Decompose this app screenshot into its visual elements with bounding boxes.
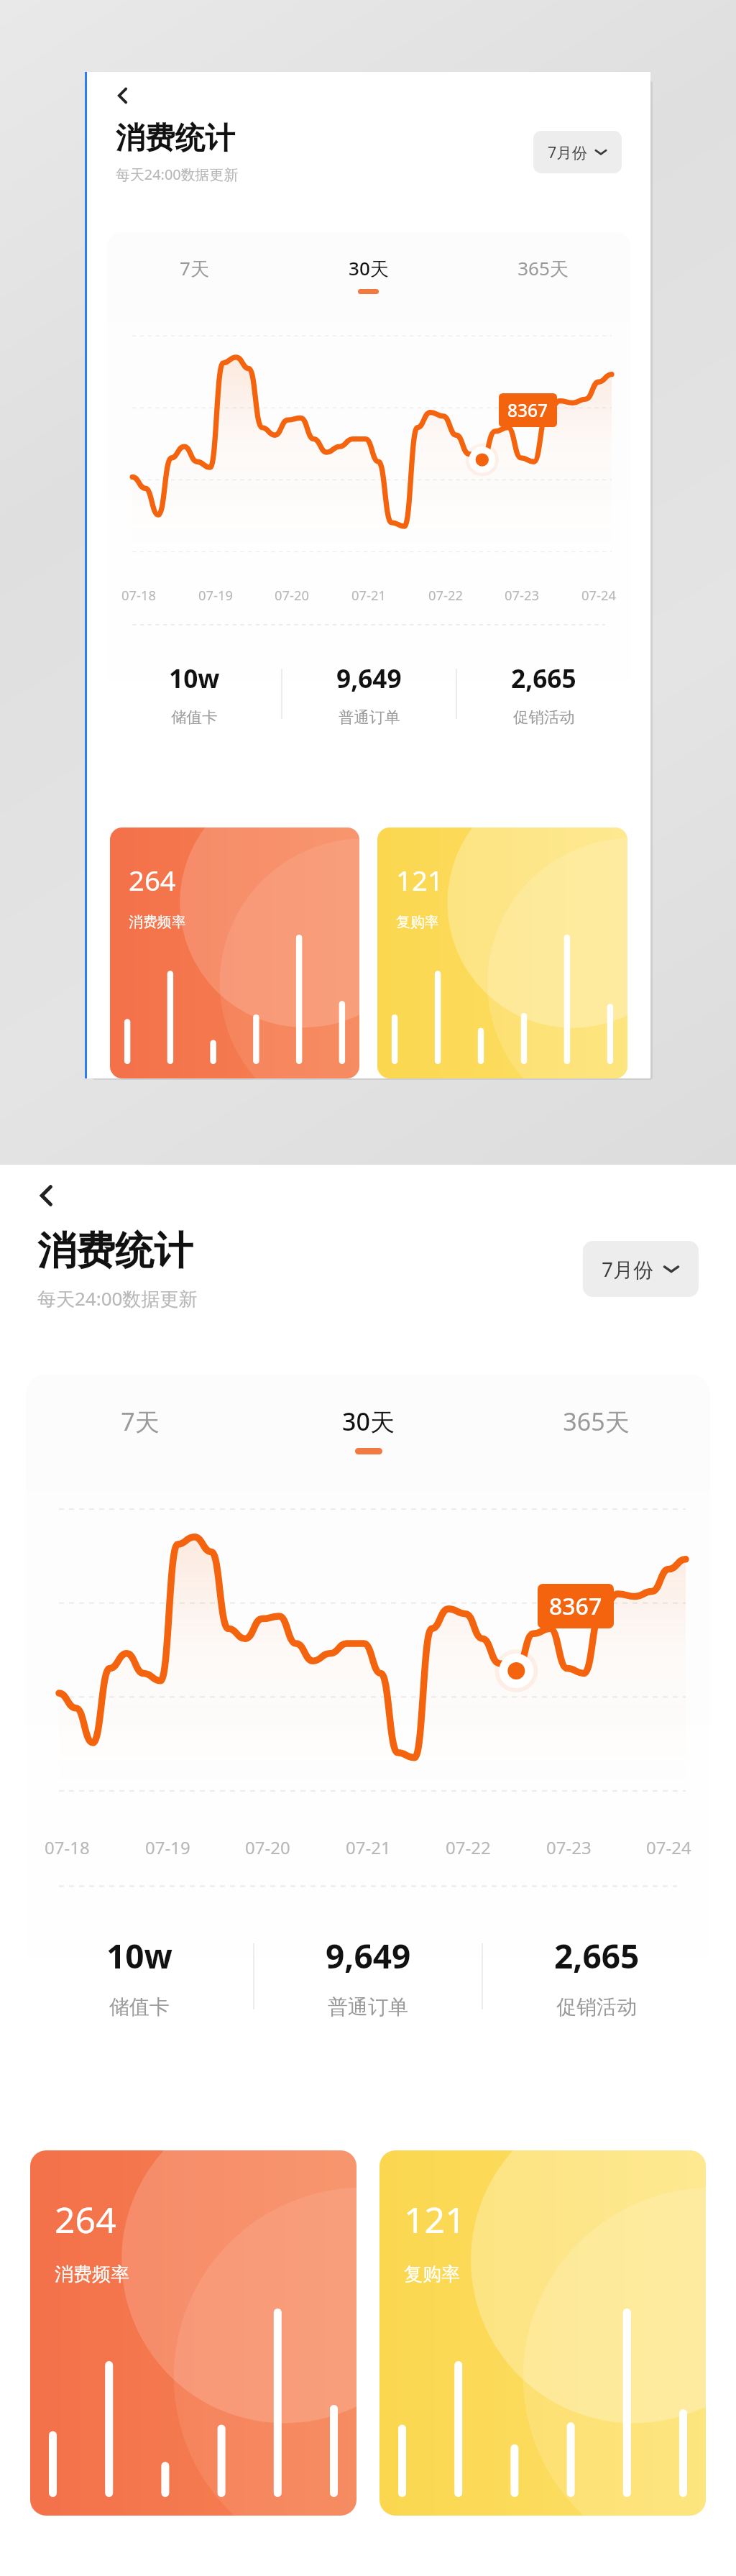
staticText: 264 bbox=[129, 861, 176, 899]
button[interactable]: 9,649 bbox=[282, 661, 456, 727]
staticText: 消费频率 bbox=[55, 2263, 129, 2286]
staticText: 每天24:00数据更新 bbox=[116, 165, 239, 184]
staticText: 07-23 bbox=[546, 1835, 592, 1859]
staticText: 10w bbox=[106, 1933, 172, 1979]
staticText: 9,649 bbox=[326, 1933, 411, 1979]
staticText: 7月份 bbox=[602, 1255, 654, 1283]
staticText: 365天 bbox=[517, 255, 569, 281]
staticText: 07-21 bbox=[346, 1835, 391, 1859]
staticText: 264 bbox=[55, 2195, 116, 2244]
staticText: 2,665 bbox=[511, 661, 576, 695]
staticText: 消费频率 bbox=[129, 913, 186, 931]
staticText: 07-20 bbox=[245, 1835, 290, 1859]
button[interactable]: 10w bbox=[107, 661, 281, 727]
button[interactable]: 264 bbox=[110, 828, 359, 1078]
staticText: 消费统计 bbox=[37, 1227, 193, 1275]
staticText: 8367 bbox=[507, 398, 548, 422]
button[interactable]: 30天 bbox=[281, 255, 456, 294]
staticText: 10w bbox=[169, 661, 220, 695]
button[interactable]: 121 bbox=[377, 828, 627, 1078]
button[interactable]: 365天 bbox=[456, 255, 630, 294]
staticText: 储值卡 bbox=[109, 1994, 170, 2020]
button[interactable]: 365天 bbox=[482, 1405, 710, 1454]
button[interactable]: 9,649 bbox=[254, 1933, 482, 2020]
staticText: 2,665 bbox=[554, 1933, 640, 1979]
staticText: 121 bbox=[396, 861, 443, 899]
button[interactable]: 7天 bbox=[26, 1405, 254, 1454]
staticText: 9,649 bbox=[336, 661, 402, 695]
staticText: 30天 bbox=[349, 255, 389, 281]
staticText: 07-24 bbox=[581, 586, 616, 604]
button[interactable]: Back bbox=[111, 84, 134, 107]
button[interactable]: 7月份 bbox=[533, 131, 622, 173]
staticText: 8367 bbox=[549, 1590, 602, 1622]
staticText: 7天 bbox=[121, 1405, 160, 1438]
button[interactable]: 7天 bbox=[107, 255, 281, 294]
staticText: 07-23 bbox=[505, 586, 539, 604]
staticText: 消费统计 bbox=[116, 119, 235, 157]
button[interactable]: 10w bbox=[26, 1933, 253, 2020]
staticText: 储值卡 bbox=[171, 707, 218, 727]
button[interactable]: Back bbox=[32, 1181, 62, 1211]
button[interactable]: 2,665 bbox=[457, 661, 630, 727]
staticText: 普通订单 bbox=[339, 707, 400, 727]
staticText: 7月份 bbox=[548, 142, 588, 162]
staticText: 07-21 bbox=[351, 586, 386, 604]
staticText: 07-19 bbox=[198, 586, 233, 604]
staticText: 07-20 bbox=[275, 586, 309, 604]
staticText: 07-18 bbox=[45, 1835, 90, 1859]
staticText: 07-24 bbox=[646, 1835, 691, 1859]
staticText: 30天 bbox=[342, 1405, 395, 1438]
staticText: 复购率 bbox=[396, 913, 439, 931]
staticText: 普通订单 bbox=[328, 1994, 408, 2020]
staticText: 促销活动 bbox=[513, 707, 575, 727]
staticText: 07-19 bbox=[145, 1835, 190, 1859]
button[interactable]: 264 bbox=[30, 2150, 356, 2516]
staticText: 促销活动 bbox=[556, 1994, 637, 2020]
staticText: 07-22 bbox=[428, 586, 463, 604]
button[interactable]: 7月份 bbox=[583, 1241, 699, 1297]
staticText: 365天 bbox=[563, 1405, 630, 1438]
staticText: 每天24:00数据更新 bbox=[37, 1285, 198, 1311]
staticText: 121 bbox=[404, 2195, 466, 2244]
staticText: 07-18 bbox=[121, 586, 156, 604]
button[interactable]: 2,665 bbox=[483, 1933, 710, 2020]
staticText: 7天 bbox=[180, 255, 209, 281]
staticText: 复购率 bbox=[404, 2263, 460, 2286]
staticText: 07-22 bbox=[446, 1835, 491, 1859]
button[interactable]: 30天 bbox=[254, 1405, 482, 1454]
button[interactable]: 121 bbox=[379, 2150, 706, 2516]
